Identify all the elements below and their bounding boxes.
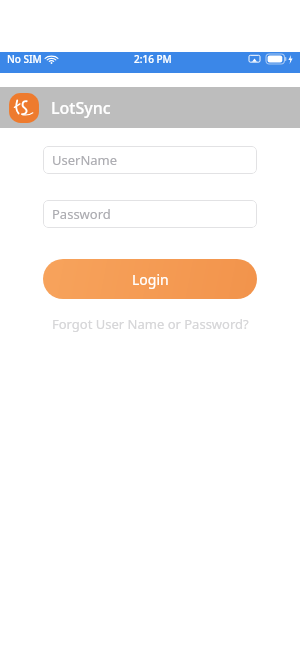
staticText: LotSync — [51, 97, 111, 119]
staticText: UserName — [52, 151, 118, 169]
other: LotSync logo — [7, 91, 41, 125]
staticText: Login — [132, 270, 169, 289]
staticText: No SIM — [7, 52, 42, 66]
button[interactable]: Login — [43, 259, 257, 299]
button[interactable]: UserName — [43, 146, 257, 174]
staticText: 2:16 PM — [134, 52, 172, 66]
staticText: Forgot User Name or Password? — [52, 315, 249, 333]
button[interactable]: Forgot User Name or Password? — [43, 313, 257, 335]
staticText: Password — [52, 205, 111, 223]
other: AirPlay — [249, 54, 260, 65]
other: Wi-Fi — [46, 54, 57, 65]
button[interactable]: Password — [43, 200, 257, 228]
other: Battery charging — [266, 54, 293, 64]
